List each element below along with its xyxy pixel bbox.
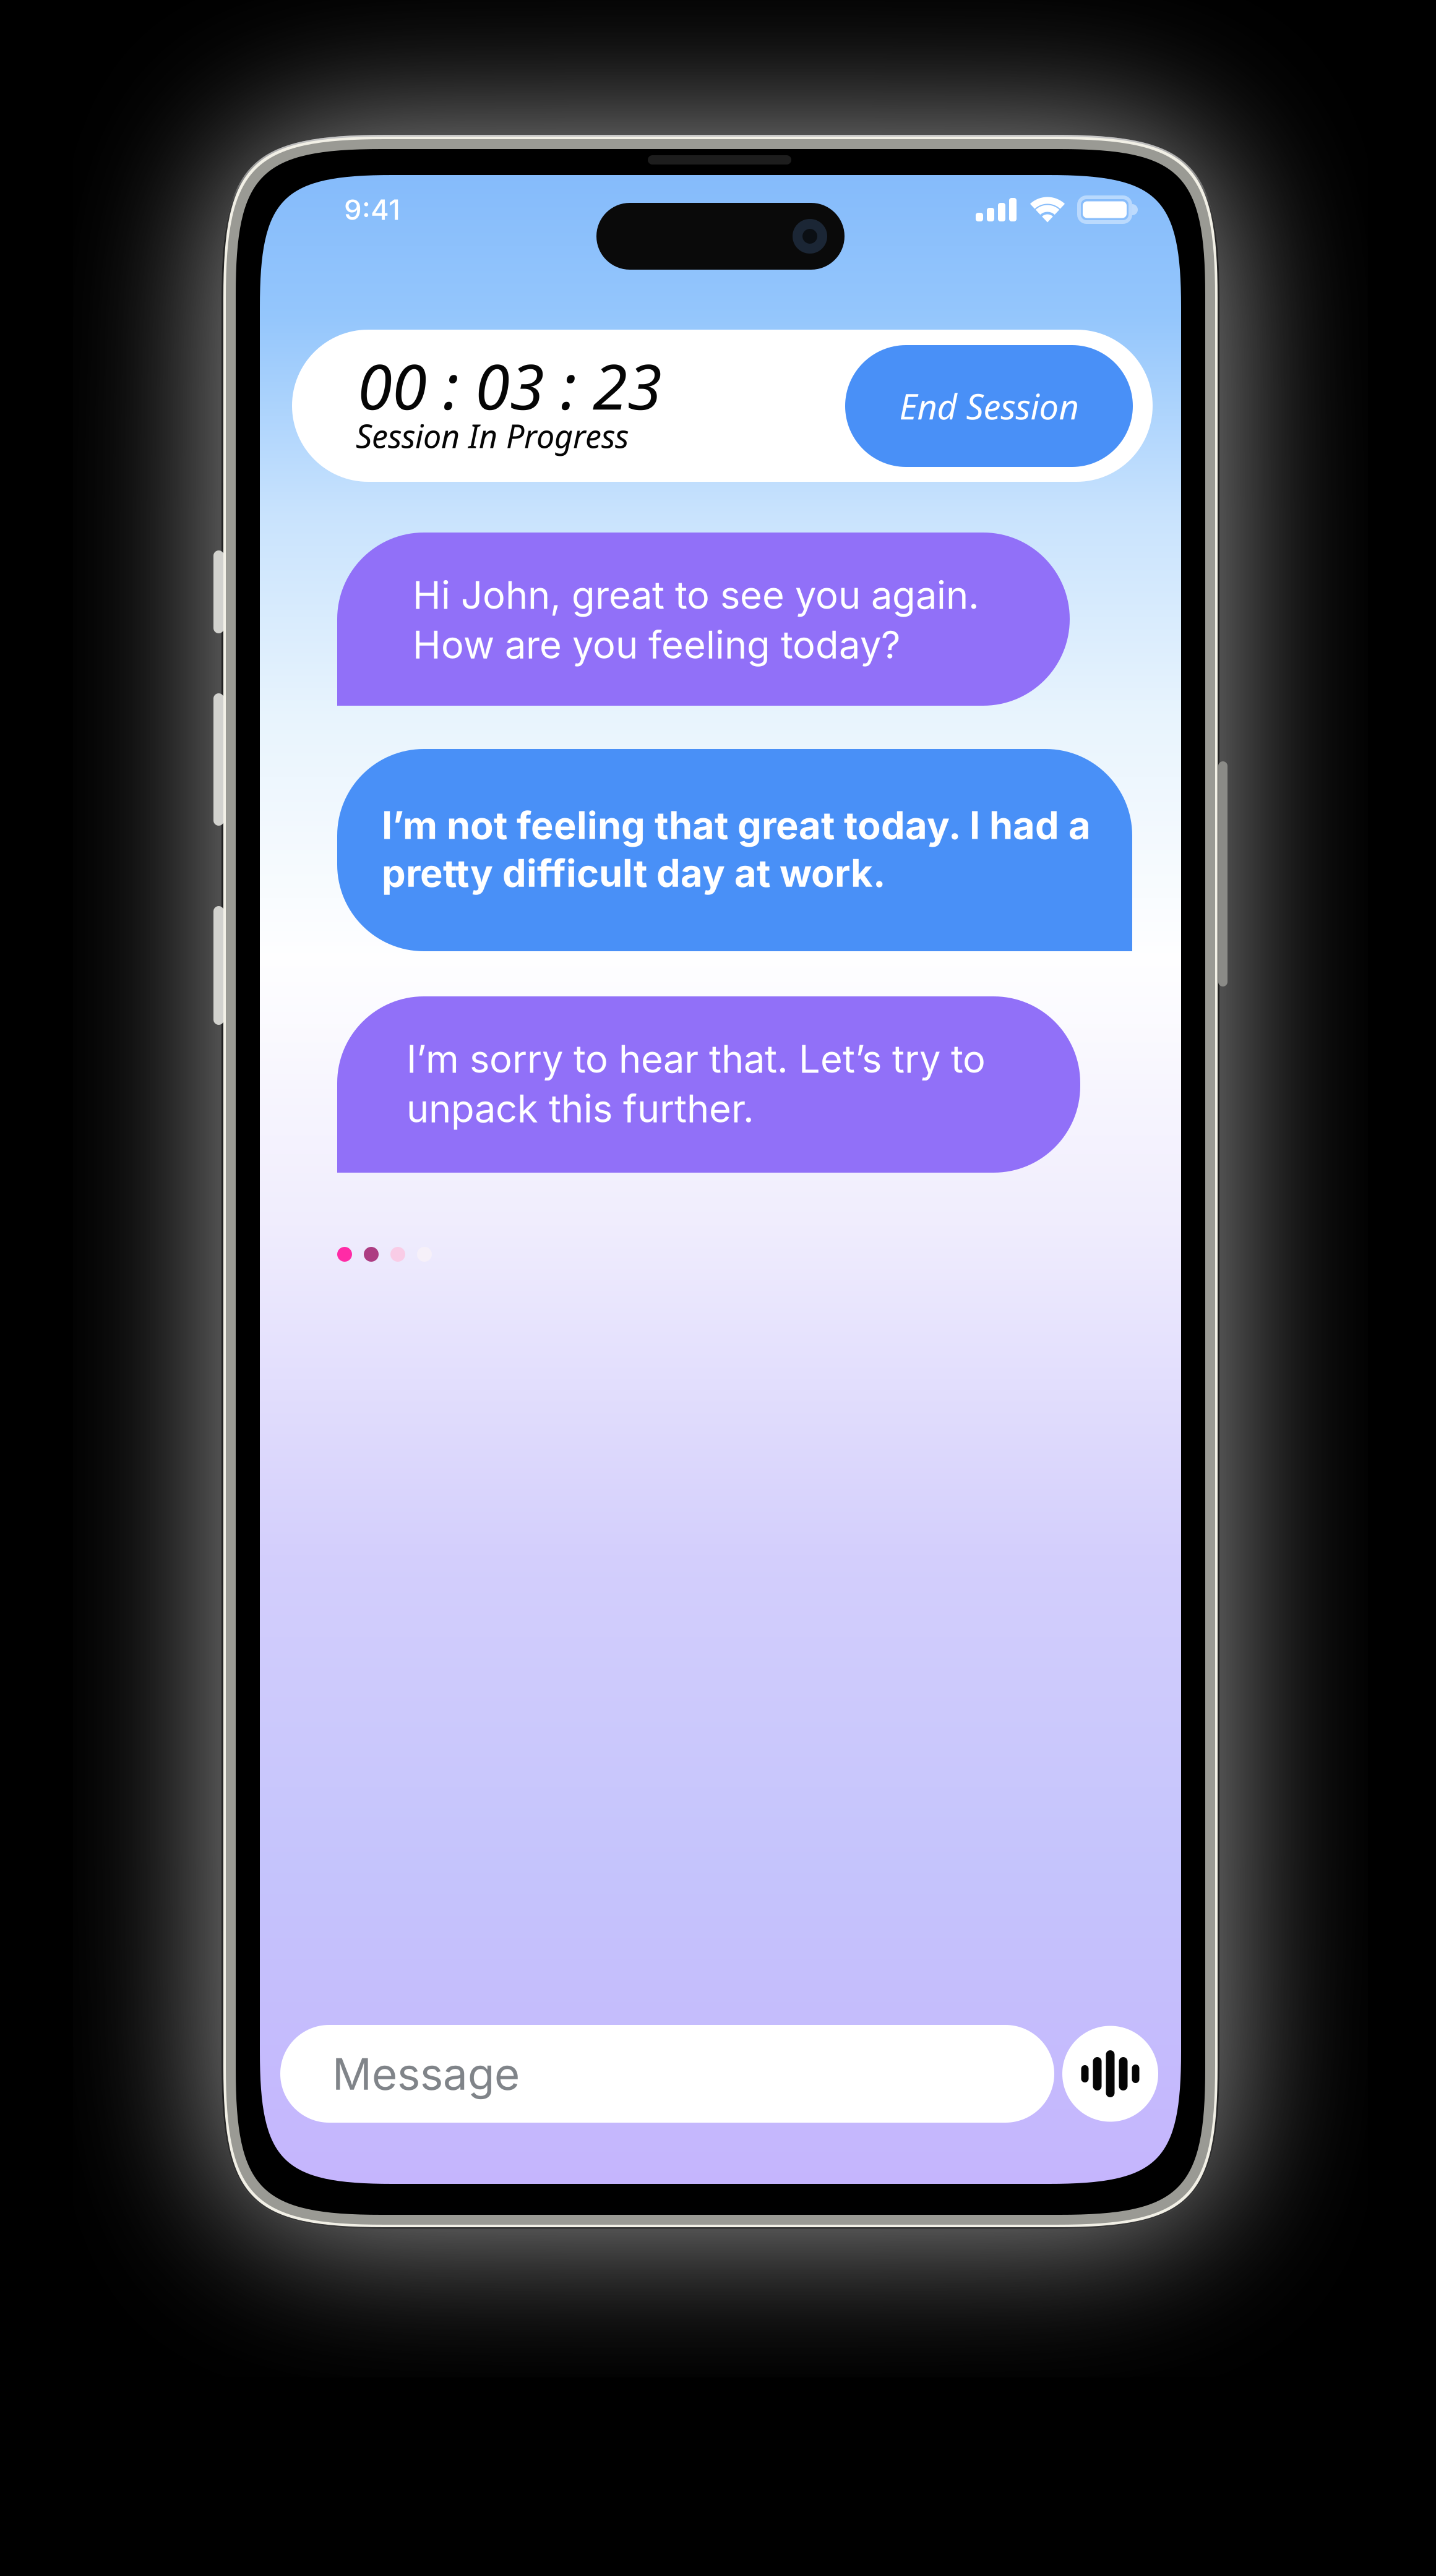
staticText: Hi John, great to see you again. [413,572,979,618]
staticText: pretty difficult day at work. [382,850,885,896]
staticText: End Session [899,382,1079,430]
staticText: I’m sorry to hear that. Let’s try to [406,1036,986,1082]
staticText: I’m not feeling that great today. I had … [382,802,1091,848]
staticText: unpack this further. [406,1086,754,1131]
button[interactable]: Message [280,2025,1054,2123]
staticText: 00 : 03 : 23 [358,343,662,428]
staticText: 9:41 [344,193,400,227]
button[interactable]: End Session [845,345,1133,467]
staticText: Message [332,2047,520,2100]
staticText: How are you feeling today? [413,622,900,668]
staticText: Session In Progress [356,414,629,458]
button[interactable]: Record voice message [1062,2026,1158,2122]
